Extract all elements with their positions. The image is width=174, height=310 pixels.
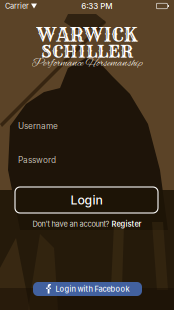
- staticText: Carrier: [5, 1, 29, 10]
- staticText: Username: [18, 121, 58, 131]
- staticText: Password: [18, 155, 56, 165]
- staticText: Login with Facebook: [55, 284, 129, 293]
- staticText: Login: [70, 193, 102, 207]
- button[interactable]: Login: [15, 187, 158, 213]
- staticText: WARWICK: [36, 23, 137, 47]
- staticText: 6:33 PM: [81, 1, 112, 11]
- staticText: Don't have an account?: [32, 219, 109, 228]
- staticText: Register: [111, 219, 141, 228]
- staticText: SCHILLER: [41, 41, 133, 62]
- button[interactable]: Don't have an account?: [0, 218, 174, 230]
- button[interactable]: Login with Facebook: [33, 282, 142, 296]
- staticText: Performance Horsemanship: [31, 56, 142, 71]
